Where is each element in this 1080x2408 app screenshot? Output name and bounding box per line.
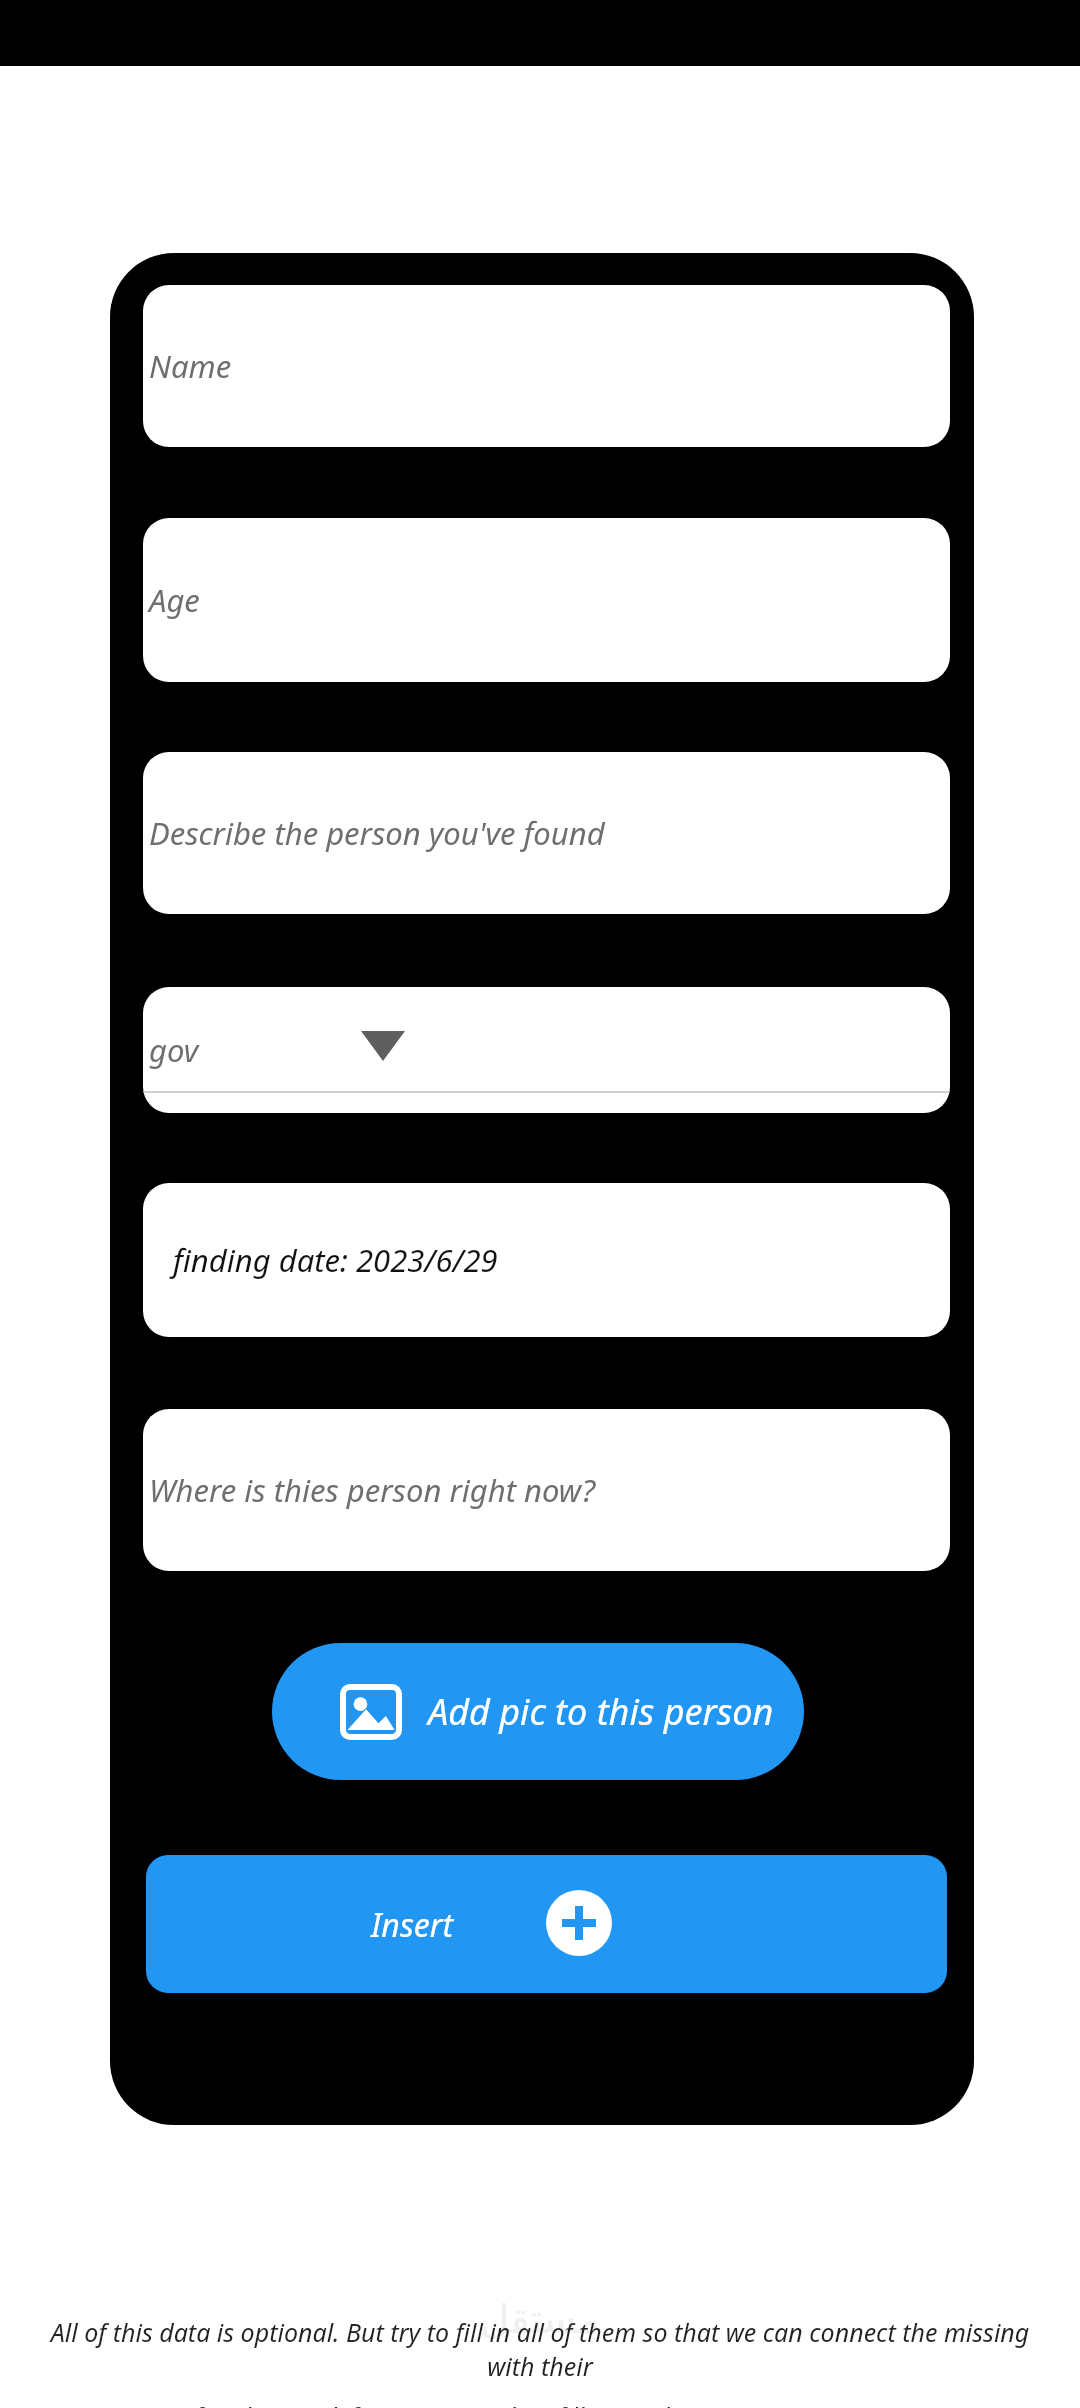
button[interactable]: Describe the person you've found [143, 752, 950, 914]
staticText: gov [149, 1029, 199, 1071]
staticText: Age [149, 579, 200, 621]
other: Add [546, 1890, 612, 1956]
staticText: families, and if you cannot, then fill o… [194, 2399, 887, 2408]
button[interactable]: Name [143, 285, 950, 447]
staticText: Add pic to this person [428, 1687, 774, 1736]
button[interactable]: finding date: 2023/6/29 [143, 1183, 950, 1337]
staticText: All of this data is optional. But try to… [40, 2315, 1040, 2383]
staticText: مستقل [480, 2296, 600, 2343]
button[interactable]: gov [143, 987, 950, 1113]
staticText: finding date: 2023/6/29 [173, 1239, 498, 1281]
button[interactable]: Add pic to this person [272, 1643, 804, 1780]
button[interactable]: Where is thies person right now? [143, 1409, 950, 1571]
staticText: Name [149, 345, 232, 387]
button[interactable]: Insert [146, 1855, 947, 1993]
staticText: Where is thies person right now? [149, 1469, 596, 1511]
button[interactable]: Age [143, 518, 950, 682]
staticText: Insert [371, 1903, 454, 1947]
staticText: Describe the person you've found [149, 812, 605, 854]
